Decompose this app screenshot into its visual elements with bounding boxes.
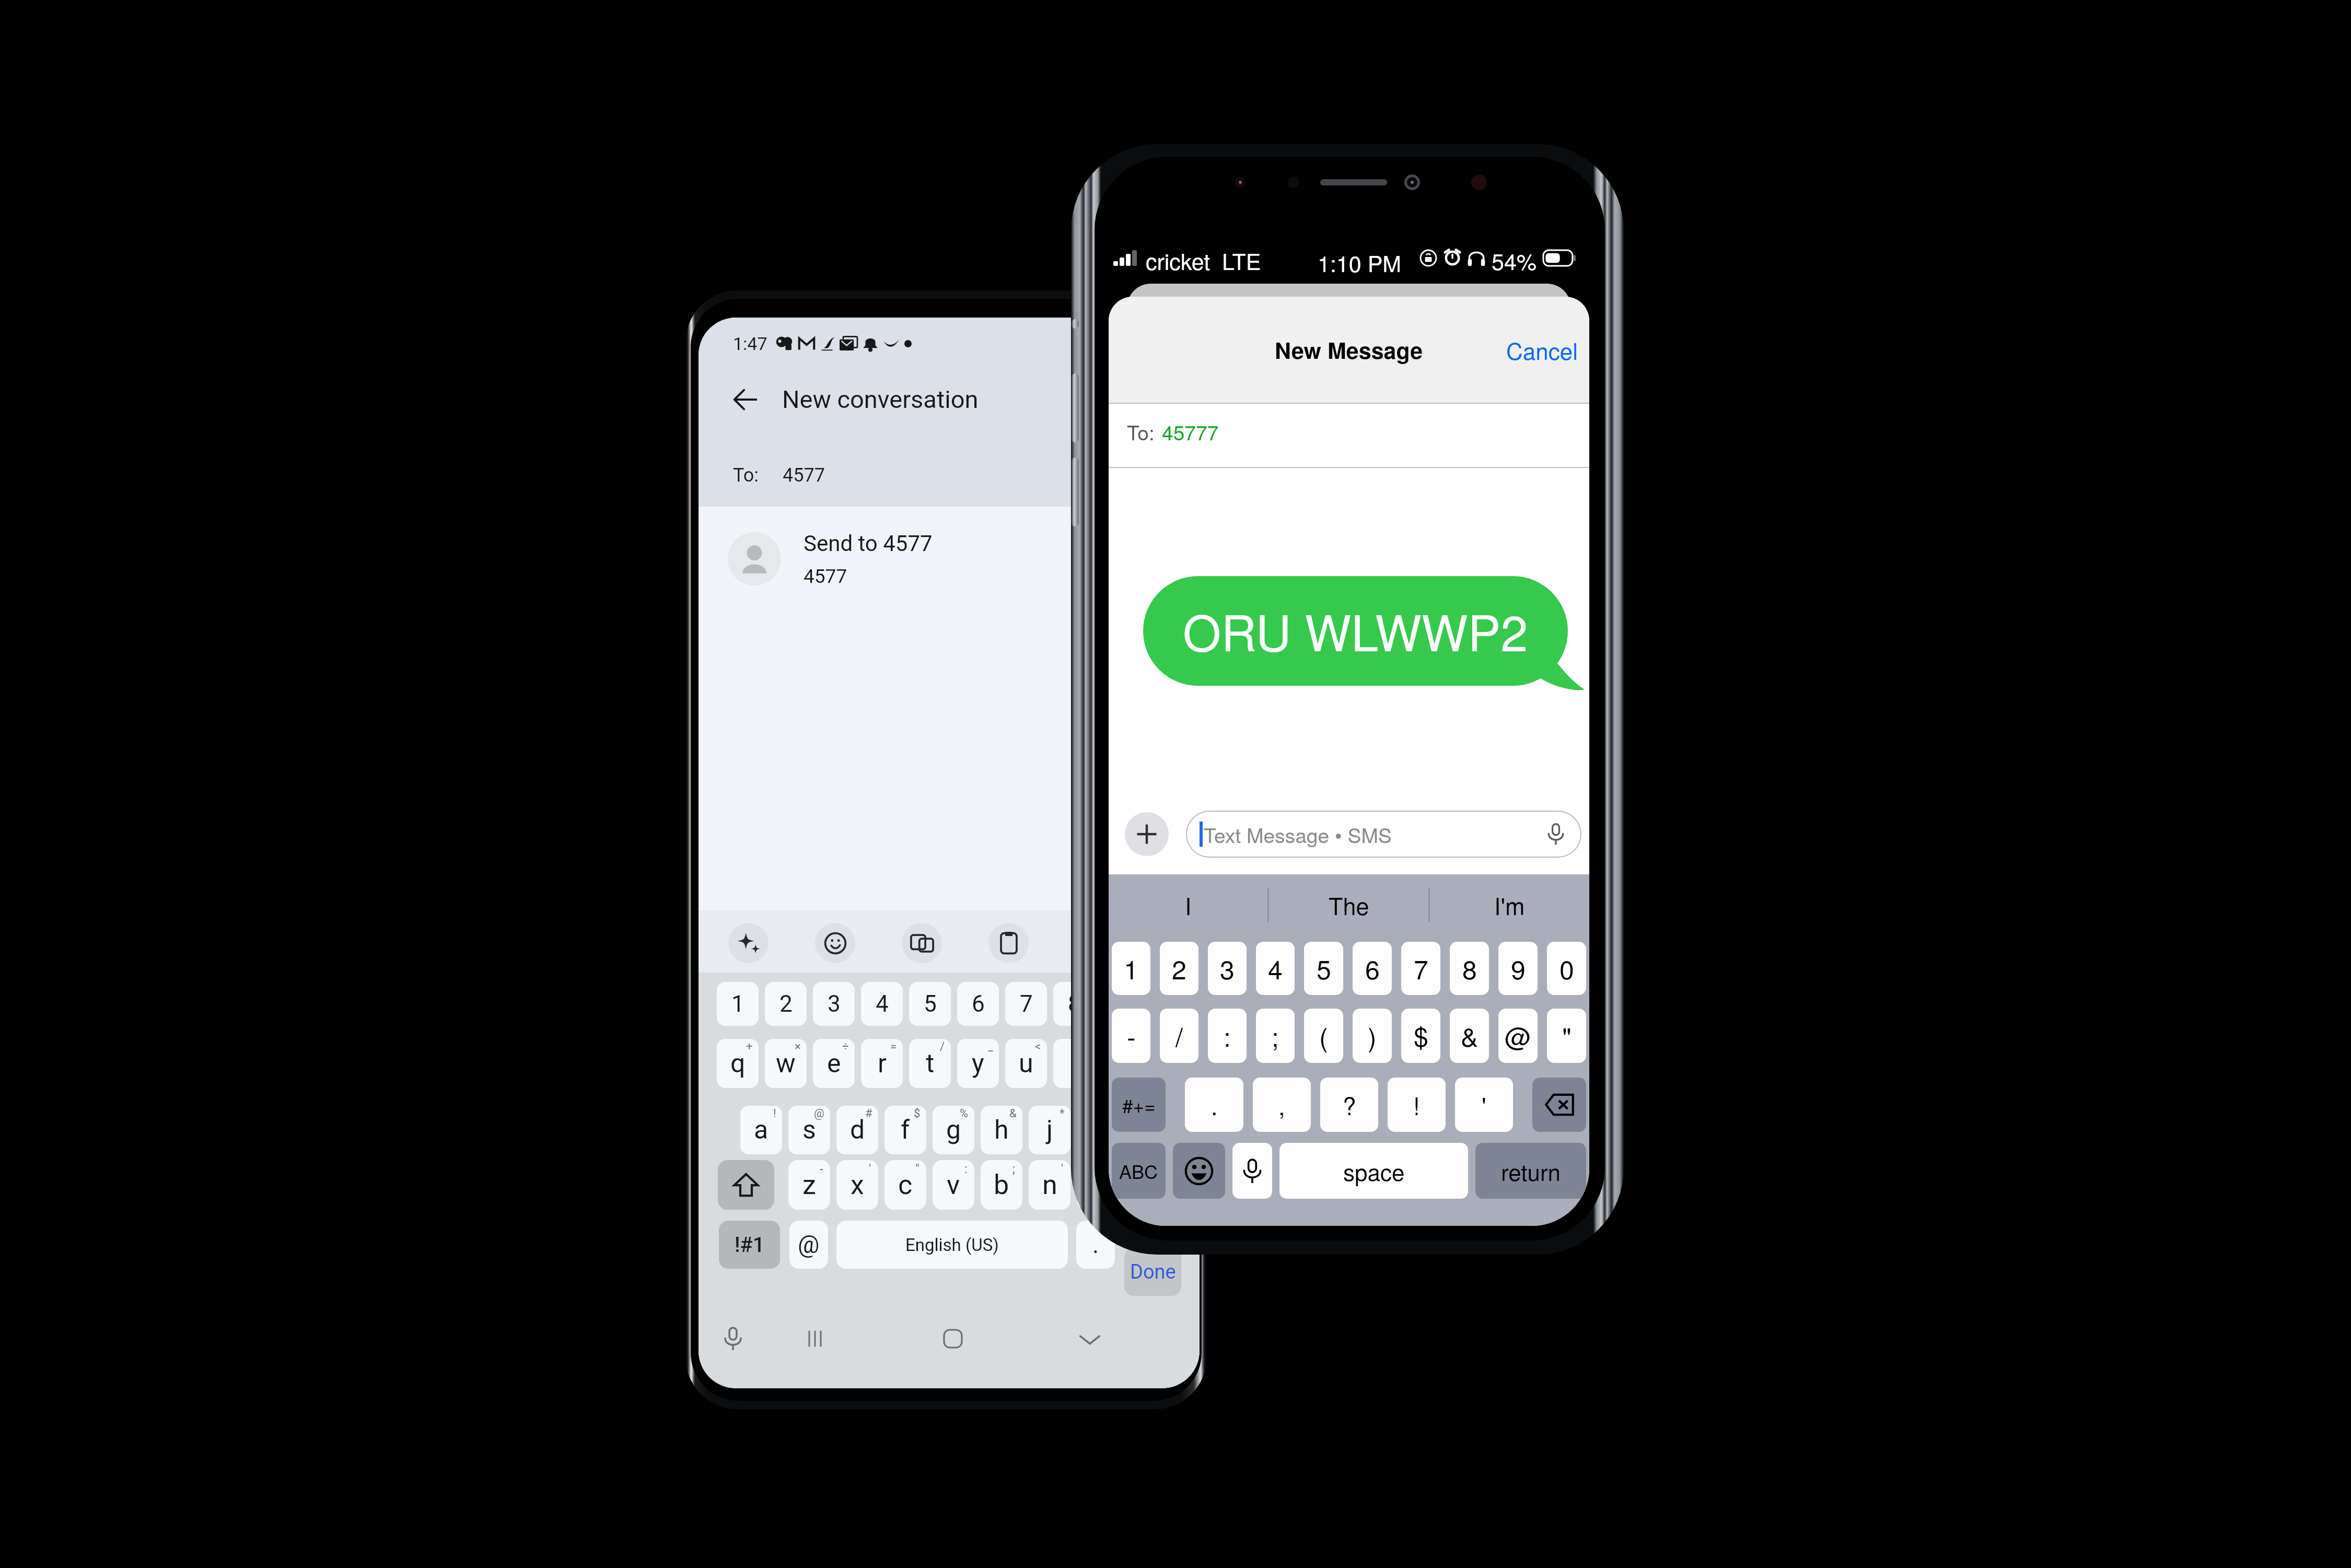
button[interactable]: % bbox=[933, 1106, 974, 1154]
button[interactable]: × bbox=[765, 1039, 807, 1088]
button[interactable]: . bbox=[1076, 1221, 1115, 1269]
button[interactable]: " bbox=[884, 1160, 926, 1210]
button[interactable]: 8 bbox=[1450, 942, 1489, 995]
button[interactable]: $ bbox=[1401, 1009, 1440, 1063]
button[interactable]: Keyboard tool bbox=[988, 923, 1029, 963]
button[interactable]: ( bbox=[1077, 1106, 1119, 1154]
staticText: @ bbox=[798, 1231, 820, 1259]
button[interactable]: ! bbox=[740, 1106, 782, 1154]
button[interactable]: I'm bbox=[1430, 874, 1589, 935]
button[interactable]: 9 bbox=[1498, 942, 1538, 995]
button[interactable]: " bbox=[1547, 1009, 1586, 1063]
button[interactable]: # bbox=[836, 1106, 878, 1154]
button[interactable]: < bbox=[1005, 1039, 1047, 1088]
button[interactable]: Add attachment bbox=[1125, 812, 1169, 856]
button[interactable]: 4 bbox=[861, 982, 903, 1026]
button[interactable]: @ bbox=[788, 1106, 830, 1154]
staticText: = bbox=[890, 1040, 897, 1054]
button[interactable]: + bbox=[717, 1039, 759, 1088]
button[interactable]: ABC bbox=[1112, 1143, 1166, 1199]
button[interactable]: 1 bbox=[717, 982, 759, 1026]
button[interactable]: 0 bbox=[1547, 942, 1586, 995]
button[interactable]: 5 bbox=[1304, 942, 1343, 995]
button[interactable]: 1 bbox=[1112, 942, 1150, 995]
button[interactable]: 3 bbox=[813, 982, 855, 1026]
button[interactable]: @ bbox=[1498, 1009, 1538, 1063]
button[interactable]: Voice input bbox=[717, 1323, 749, 1354]
button[interactable]: @ bbox=[789, 1221, 828, 1269]
button[interactable]: Keyboard tool bbox=[728, 923, 769, 963]
button[interactable]: Keyboard tool bbox=[815, 923, 855, 963]
button[interactable]: Dictate bbox=[1232, 1143, 1272, 1199]
button[interactable]: * bbox=[1029, 1106, 1070, 1154]
button[interactable]: ' bbox=[1029, 1160, 1070, 1210]
button[interactable]: Shift bbox=[718, 1160, 774, 1210]
button[interactable]: Back bbox=[722, 377, 768, 423]
button[interactable]: Cancel bbox=[1506, 333, 1578, 366]
button[interactable]: 7 bbox=[1005, 982, 1047, 1026]
button[interactable]: = bbox=[861, 1039, 903, 1088]
button[interactable]: > bbox=[1053, 1039, 1095, 1088]
button[interactable]: ! bbox=[1388, 1078, 1446, 1132]
button[interactable]: - bbox=[788, 1160, 830, 1210]
button[interactable]: ) bbox=[1353, 1009, 1392, 1063]
button[interactable]: ) bbox=[1125, 1106, 1167, 1154]
button[interactable]: & bbox=[1450, 1009, 1489, 1063]
button[interactable]: . bbox=[1185, 1078, 1243, 1132]
button[interactable]: ' bbox=[1455, 1078, 1513, 1132]
button[interactable]: Done bbox=[1124, 1248, 1181, 1296]
button[interactable]: 8 bbox=[1053, 982, 1095, 1026]
staticText: 1:10 PM bbox=[1318, 247, 1402, 279]
staticText: ÷ bbox=[842, 1040, 849, 1054]
button[interactable]: #+= bbox=[1112, 1078, 1166, 1132]
button[interactable]: ; bbox=[981, 1160, 1022, 1210]
staticText: $ bbox=[914, 1107, 921, 1120]
button[interactable]: ] bbox=[1149, 1039, 1191, 1088]
button[interactable]: ? bbox=[1320, 1078, 1378, 1132]
button[interactable]: Home bbox=[937, 1323, 969, 1354]
button[interactable]: Text Message • SMS bbox=[1186, 811, 1581, 858]
button[interactable]: / bbox=[909, 1039, 951, 1088]
button[interactable]: ; bbox=[1256, 1009, 1295, 1063]
button[interactable]: Send to 4577 bbox=[699, 516, 1200, 602]
button[interactable]: I bbox=[1109, 874, 1267, 935]
button[interactable]: ÷ bbox=[813, 1039, 855, 1088]
button[interactable]: : bbox=[1208, 1009, 1247, 1063]
button[interactable]: space bbox=[1279, 1143, 1468, 1199]
button[interactable]: 9 bbox=[1101, 982, 1143, 1026]
button[interactable]: Hide keyboard bbox=[1074, 1323, 1105, 1354]
button[interactable]: 5 bbox=[909, 982, 951, 1026]
button[interactable]: 2 bbox=[1160, 942, 1198, 995]
button[interactable]: !#1 bbox=[719, 1221, 780, 1269]
button[interactable]: 7 bbox=[1401, 942, 1440, 995]
button[interactable]: _ bbox=[957, 1039, 999, 1088]
button[interactable]: 3 bbox=[1208, 942, 1247, 995]
button[interactable]: Recents bbox=[799, 1323, 831, 1354]
button[interactable]: Delete bbox=[1532, 1078, 1586, 1132]
button[interactable]: 2 bbox=[765, 982, 807, 1026]
button[interactable]: : bbox=[933, 1160, 974, 1210]
staticText: . bbox=[1092, 1231, 1099, 1259]
button[interactable]: 6 bbox=[957, 982, 999, 1026]
button[interactable]: 6 bbox=[1353, 942, 1392, 995]
button[interactable]: 0 bbox=[1149, 982, 1191, 1026]
button[interactable]: , bbox=[1253, 1078, 1311, 1132]
button[interactable]: $ bbox=[884, 1106, 926, 1154]
button[interactable]: [ bbox=[1101, 1039, 1143, 1088]
staticText: p bbox=[1163, 1048, 1178, 1079]
button[interactable]: return bbox=[1475, 1143, 1586, 1199]
button[interactable]: / bbox=[1160, 1009, 1198, 1063]
button[interactable]: Keyboard tool bbox=[902, 923, 942, 963]
button[interactable]: Backspace bbox=[1131, 1160, 1187, 1210]
button[interactable]: ? bbox=[1077, 1160, 1119, 1210]
button[interactable]: ( bbox=[1304, 1009, 1343, 1063]
button[interactable]: English (US) bbox=[836, 1221, 1068, 1269]
button[interactable]: - bbox=[1112, 1009, 1150, 1063]
button[interactable]: & bbox=[981, 1106, 1022, 1154]
button[interactable]: Emoji bbox=[1173, 1143, 1225, 1199]
button[interactable]: ' bbox=[836, 1160, 878, 1210]
button[interactable]: Keyboard tool bbox=[1075, 923, 1115, 963]
button[interactable]: 4 bbox=[1256, 942, 1295, 995]
staticText: ) bbox=[1368, 1017, 1377, 1055]
button[interactable]: The bbox=[1269, 874, 1428, 935]
